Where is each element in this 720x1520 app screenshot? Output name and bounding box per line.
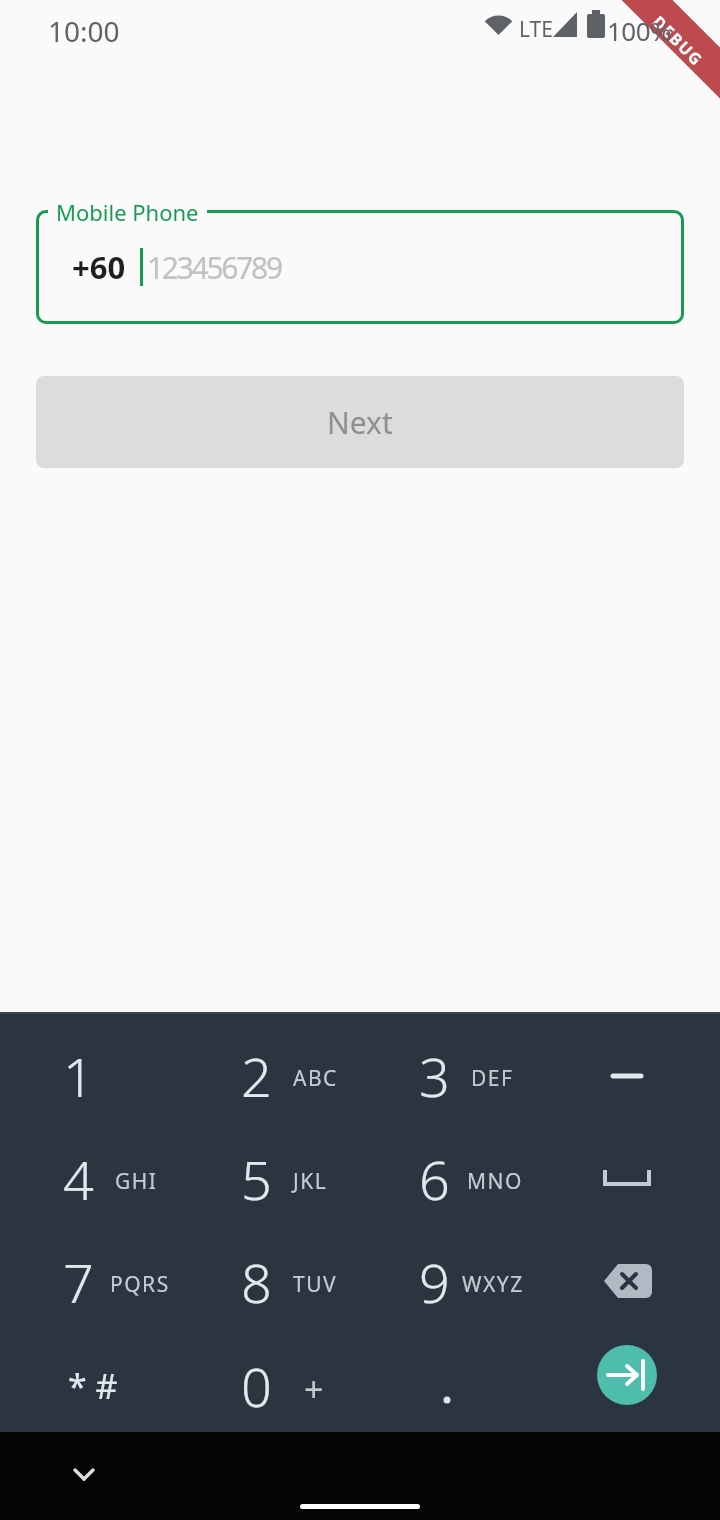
staticText: 2 [241, 1039, 272, 1113]
button[interactable] [555, 1230, 699, 1333]
staticText: 7 [63, 1245, 94, 1319]
button[interactable]: Next [36, 376, 684, 468]
staticText: 0 [241, 1349, 272, 1423]
staticText: Mobile Phone [56, 197, 199, 227]
staticText: 10:00 [48, 12, 120, 50]
button[interactable]: 9 [362, 1230, 506, 1333]
button[interactable]: 8 [184, 1230, 328, 1333]
button[interactable] [376, 1334, 520, 1437]
staticText: LTE [519, 15, 553, 44]
button[interactable]: 5 [184, 1127, 328, 1230]
staticText: WXYZ [462, 1270, 524, 1299]
button[interactable]: 7 [6, 1230, 150, 1333]
staticText: * # [68, 1363, 118, 1409]
staticText: GHI [115, 1167, 158, 1196]
staticText: DEBUG [648, 11, 708, 71]
button[interactable]: +60 [36, 210, 684, 324]
button[interactable] [555, 1024, 699, 1127]
button[interactable]: 2 [184, 1024, 328, 1127]
staticText: 9 [419, 1245, 450, 1319]
button[interactable]: 4 [6, 1127, 150, 1230]
staticText: 1 [63, 1039, 94, 1113]
staticText: 123456789 [147, 247, 281, 288]
staticText: 6 [419, 1142, 450, 1216]
staticText: 8 [241, 1245, 272, 1319]
staticText: TUV [293, 1270, 338, 1299]
staticText: JKL [293, 1167, 328, 1196]
staticText: 100% [607, 13, 672, 48]
button[interactable] [555, 1127, 699, 1230]
staticText: +60 [72, 246, 126, 288]
button[interactable] [597, 1345, 657, 1405]
button[interactable]: 1 [6, 1024, 150, 1127]
button[interactable]: 3 [362, 1024, 506, 1127]
staticText: PQRS [110, 1270, 170, 1299]
button[interactable]: 0 [184, 1334, 328, 1437]
staticText: Next [327, 402, 393, 443]
button[interactable] [58, 1452, 110, 1504]
button[interactable]: 6 [362, 1127, 506, 1230]
staticText: + [304, 1366, 324, 1412]
staticText: MNO [467, 1167, 523, 1196]
staticText: 5 [241, 1142, 272, 1216]
staticText: DEF [471, 1064, 514, 1093]
staticText: 3 [419, 1039, 450, 1113]
staticText: ABC [293, 1064, 338, 1093]
staticText: 4 [63, 1142, 94, 1216]
button[interactable]: * # [6, 1334, 180, 1437]
